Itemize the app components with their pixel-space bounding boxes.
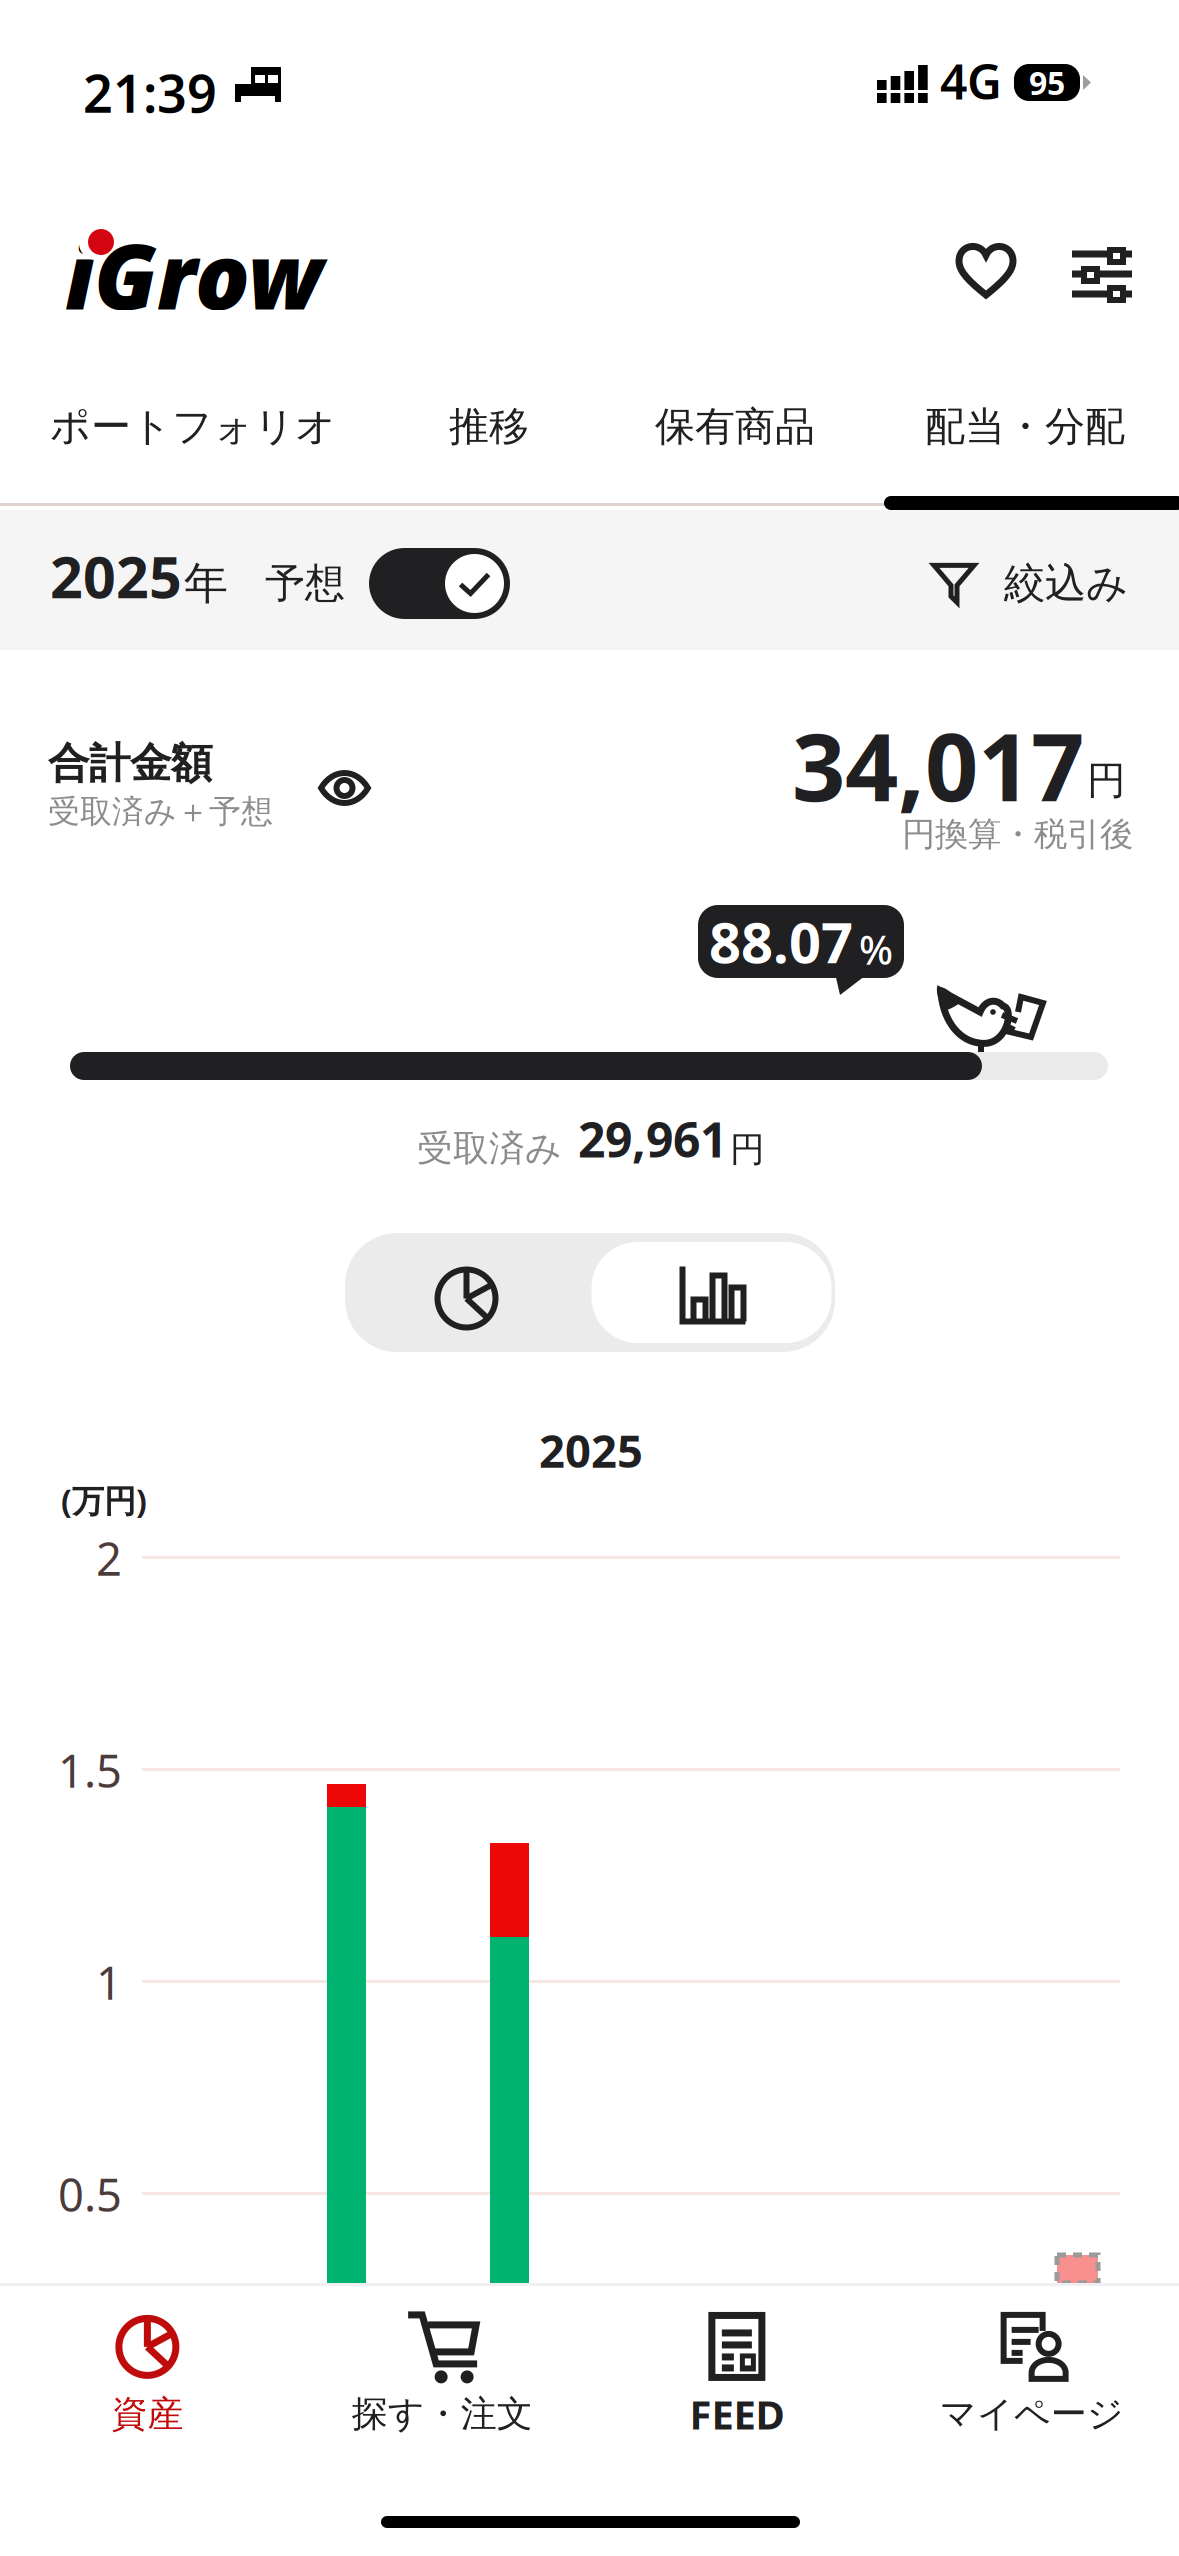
button[interactable]: Bar chart view: [588, 1233, 835, 1352]
staticText: FEED: [689, 2387, 784, 2440]
button[interactable]: Pie chart view: [345, 1233, 588, 1352]
button[interactable]: 探す・注文: [295, 2296, 590, 2446]
staticText: 2025: [539, 1420, 643, 1480]
button[interactable]: 保有商品: [633, 384, 837, 469]
staticText: 88.07: [709, 904, 853, 979]
staticText: 合計金額: [48, 738, 212, 789]
staticText: 予想: [265, 559, 345, 608]
staticText: 4G: [940, 49, 1002, 113]
staticText: 2025: [50, 538, 182, 614]
staticText: (万円): [61, 1479, 147, 1521]
staticText: 保有商品: [655, 402, 815, 451]
staticText: %: [859, 923, 893, 976]
staticText: 95: [1029, 61, 1065, 104]
staticText: 34,017: [792, 703, 1084, 827]
staticText: 1: [96, 1952, 122, 2012]
button[interactable]: Favorites: [939, 223, 1033, 313]
button[interactable]: iGrow home: [70, 232, 332, 312]
staticText: iGrow: [65, 214, 323, 334]
button[interactable]: Hide amount: [300, 754, 389, 822]
staticText: 21:39: [83, 58, 217, 127]
staticText: 探す・注文: [352, 2392, 533, 2436]
staticText: 資産: [111, 2392, 183, 2436]
staticText: 受取済み＋予想: [48, 792, 273, 831]
button[interactable]: マイページ: [884, 2296, 1179, 2446]
staticText: 受取済み: [417, 1126, 562, 1171]
staticText: 円換算・税引後: [902, 814, 1133, 855]
staticText: 29,961: [578, 1107, 727, 1171]
staticText: マイページ: [940, 2392, 1124, 2436]
button[interactable]: ポートフォリオ: [28, 384, 358, 469]
staticText: 円: [1087, 757, 1126, 804]
staticText: 年: [184, 557, 228, 611]
button[interactable]: 予想: [265, 548, 510, 619]
staticText: ポートフォリオ: [50, 402, 336, 451]
button[interactable]: Display settings: [1056, 234, 1148, 314]
button[interactable]: FEED: [589, 2296, 884, 2446]
staticText: 絞込み: [1004, 558, 1128, 609]
button[interactable]: 配当・分配: [903, 384, 1147, 469]
staticText: 2: [96, 1528, 122, 1588]
button[interactable]: 絞込み: [932, 558, 1128, 609]
staticText: 1.5: [58, 1740, 122, 1800]
button[interactable]: 推移: [427, 384, 551, 469]
staticText: 円: [730, 1128, 765, 1171]
button[interactable]: 資産: [0, 2296, 295, 2446]
staticText: 0.5: [58, 2164, 122, 2224]
staticText: 推移: [449, 402, 529, 451]
staticText: 配当・分配: [925, 402, 1125, 451]
